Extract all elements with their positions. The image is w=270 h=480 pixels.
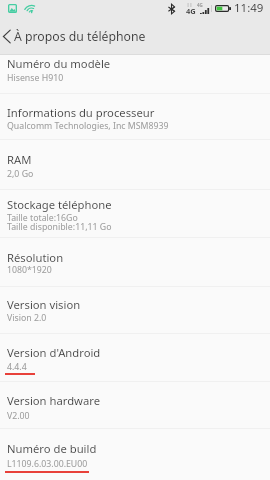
staticText: Version hardware (7, 393, 101, 408)
staticText: Qualcomm Technologies, Inc MSM8939 (7, 120, 169, 132)
button[interactable]: Back (0, 27, 14, 46)
staticText: Numéro de build (7, 441, 97, 456)
button[interactable]: Numéro de build (0, 429, 270, 480)
staticText: Numéro du modèle (7, 56, 111, 71)
staticText: Taille disponible:11,11 Go (7, 221, 112, 233)
staticText: 11:49 (234, 0, 264, 16)
button[interactable]: RAM (0, 140, 270, 190)
button[interactable]: Version hardware (0, 382, 270, 429)
button[interactable]: Résolution (0, 238, 270, 287)
staticText: Informations du processeur (7, 105, 155, 120)
staticText: V2.00 (7, 410, 30, 422)
button[interactable]: Version d'Android (0, 334, 270, 382)
staticText: Hisense H910 (7, 72, 64, 84)
button[interactable]: Version vision (0, 287, 270, 334)
staticText: Version d'Android (7, 345, 101, 360)
staticText: Taille totale:16Go (7, 212, 78, 224)
staticText: 2,0 Go (7, 168, 34, 180)
staticText: Vision 2.0 (7, 312, 47, 324)
staticText: 4G (186, 6, 196, 16)
staticText: L1109.6.03.00.EU00 (7, 458, 88, 470)
staticText: À propos du téléphone (14, 28, 146, 45)
staticText: Stockage téléphone (7, 197, 112, 212)
staticText: 1080*1920 (7, 264, 52, 276)
staticText: 4G (197, 2, 203, 8)
staticText: Version vision (7, 297, 81, 312)
staticText: RAM (7, 152, 32, 167)
button[interactable]: Numéro du modèle (0, 54, 270, 94)
button[interactable]: Informations du processeur (0, 94, 270, 140)
staticText: Résolution (7, 250, 64, 265)
staticText: 4.4.4 (7, 361, 27, 373)
button[interactable]: Stockage téléphone (0, 190, 270, 238)
